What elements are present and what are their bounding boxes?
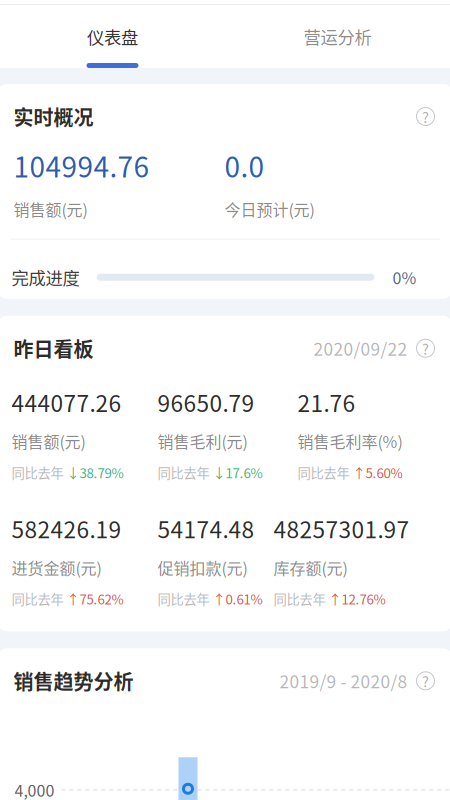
staticText: 进货金额(元) xyxy=(11,556,101,579)
staticText: 38.79% xyxy=(79,463,123,482)
staticText: 库存额(元) xyxy=(273,556,347,579)
staticText: 582426.19 xyxy=(11,512,121,545)
button[interactable]: Help xyxy=(414,105,436,127)
staticText: 17.6% xyxy=(225,463,262,482)
button[interactable]: Help xyxy=(414,670,436,692)
staticText: 75.62% xyxy=(79,589,123,608)
staticText: ↓ xyxy=(66,463,79,482)
staticText: 销售趋势分析 xyxy=(13,666,133,695)
staticText: 销售额(元) xyxy=(13,197,87,221)
staticText: 昨日看板 xyxy=(13,334,93,363)
staticText: 同比去年 xyxy=(297,463,352,482)
staticText: 促销扣款(元) xyxy=(157,556,247,579)
staticText: 0.61% xyxy=(225,589,262,608)
staticText: 仪表盘 xyxy=(87,24,138,49)
staticText: 12.76% xyxy=(341,589,385,608)
staticText: 营运分析 xyxy=(303,24,371,49)
staticText: 2020/09/22 xyxy=(313,336,407,361)
staticText: 5.60% xyxy=(365,463,402,482)
staticText: ↑ xyxy=(328,589,341,608)
staticText: ↑ xyxy=(352,463,365,482)
button[interactable]: 营运分析 xyxy=(225,5,450,68)
staticText: 0% xyxy=(392,266,416,289)
staticText: 同比去年 xyxy=(273,589,328,608)
staticText: ? xyxy=(422,106,429,127)
staticText: 同比去年 xyxy=(157,463,212,482)
staticText: 21.76 xyxy=(297,386,355,418)
staticText: 今日预计(元) xyxy=(224,197,314,221)
staticText: 0.0 xyxy=(224,145,264,185)
staticText: 销售毛利(元) xyxy=(157,430,247,453)
staticText: 同比去年 xyxy=(11,463,66,482)
staticText: 444077.26 xyxy=(11,386,121,418)
button[interactable]: Help xyxy=(414,337,436,359)
staticText: 54174.48 xyxy=(157,512,254,545)
staticText: 同比去年 xyxy=(11,589,66,608)
staticText: 4,000 xyxy=(14,778,54,800)
staticText: 104994.76 xyxy=(13,145,149,185)
staticText: ↑ xyxy=(212,589,225,608)
staticText: ? xyxy=(422,338,429,359)
staticText: 同比去年 xyxy=(157,589,212,608)
staticText: 完成进度 xyxy=(11,265,79,290)
staticText: 实时概况 xyxy=(13,102,93,131)
staticText: ↓ xyxy=(212,463,225,482)
staticText: 销售额(元) xyxy=(11,430,85,453)
staticText: 48257301.97 xyxy=(273,512,409,545)
staticText: ? xyxy=(422,670,429,691)
staticText: 销售毛利率(%) xyxy=(297,430,402,453)
staticText: 2019/9 - 2020/8 xyxy=(279,668,407,693)
staticText: 96650.79 xyxy=(157,386,254,418)
staticText: ↑ xyxy=(66,589,79,608)
button[interactable]: 仪表盘 xyxy=(0,5,225,68)
